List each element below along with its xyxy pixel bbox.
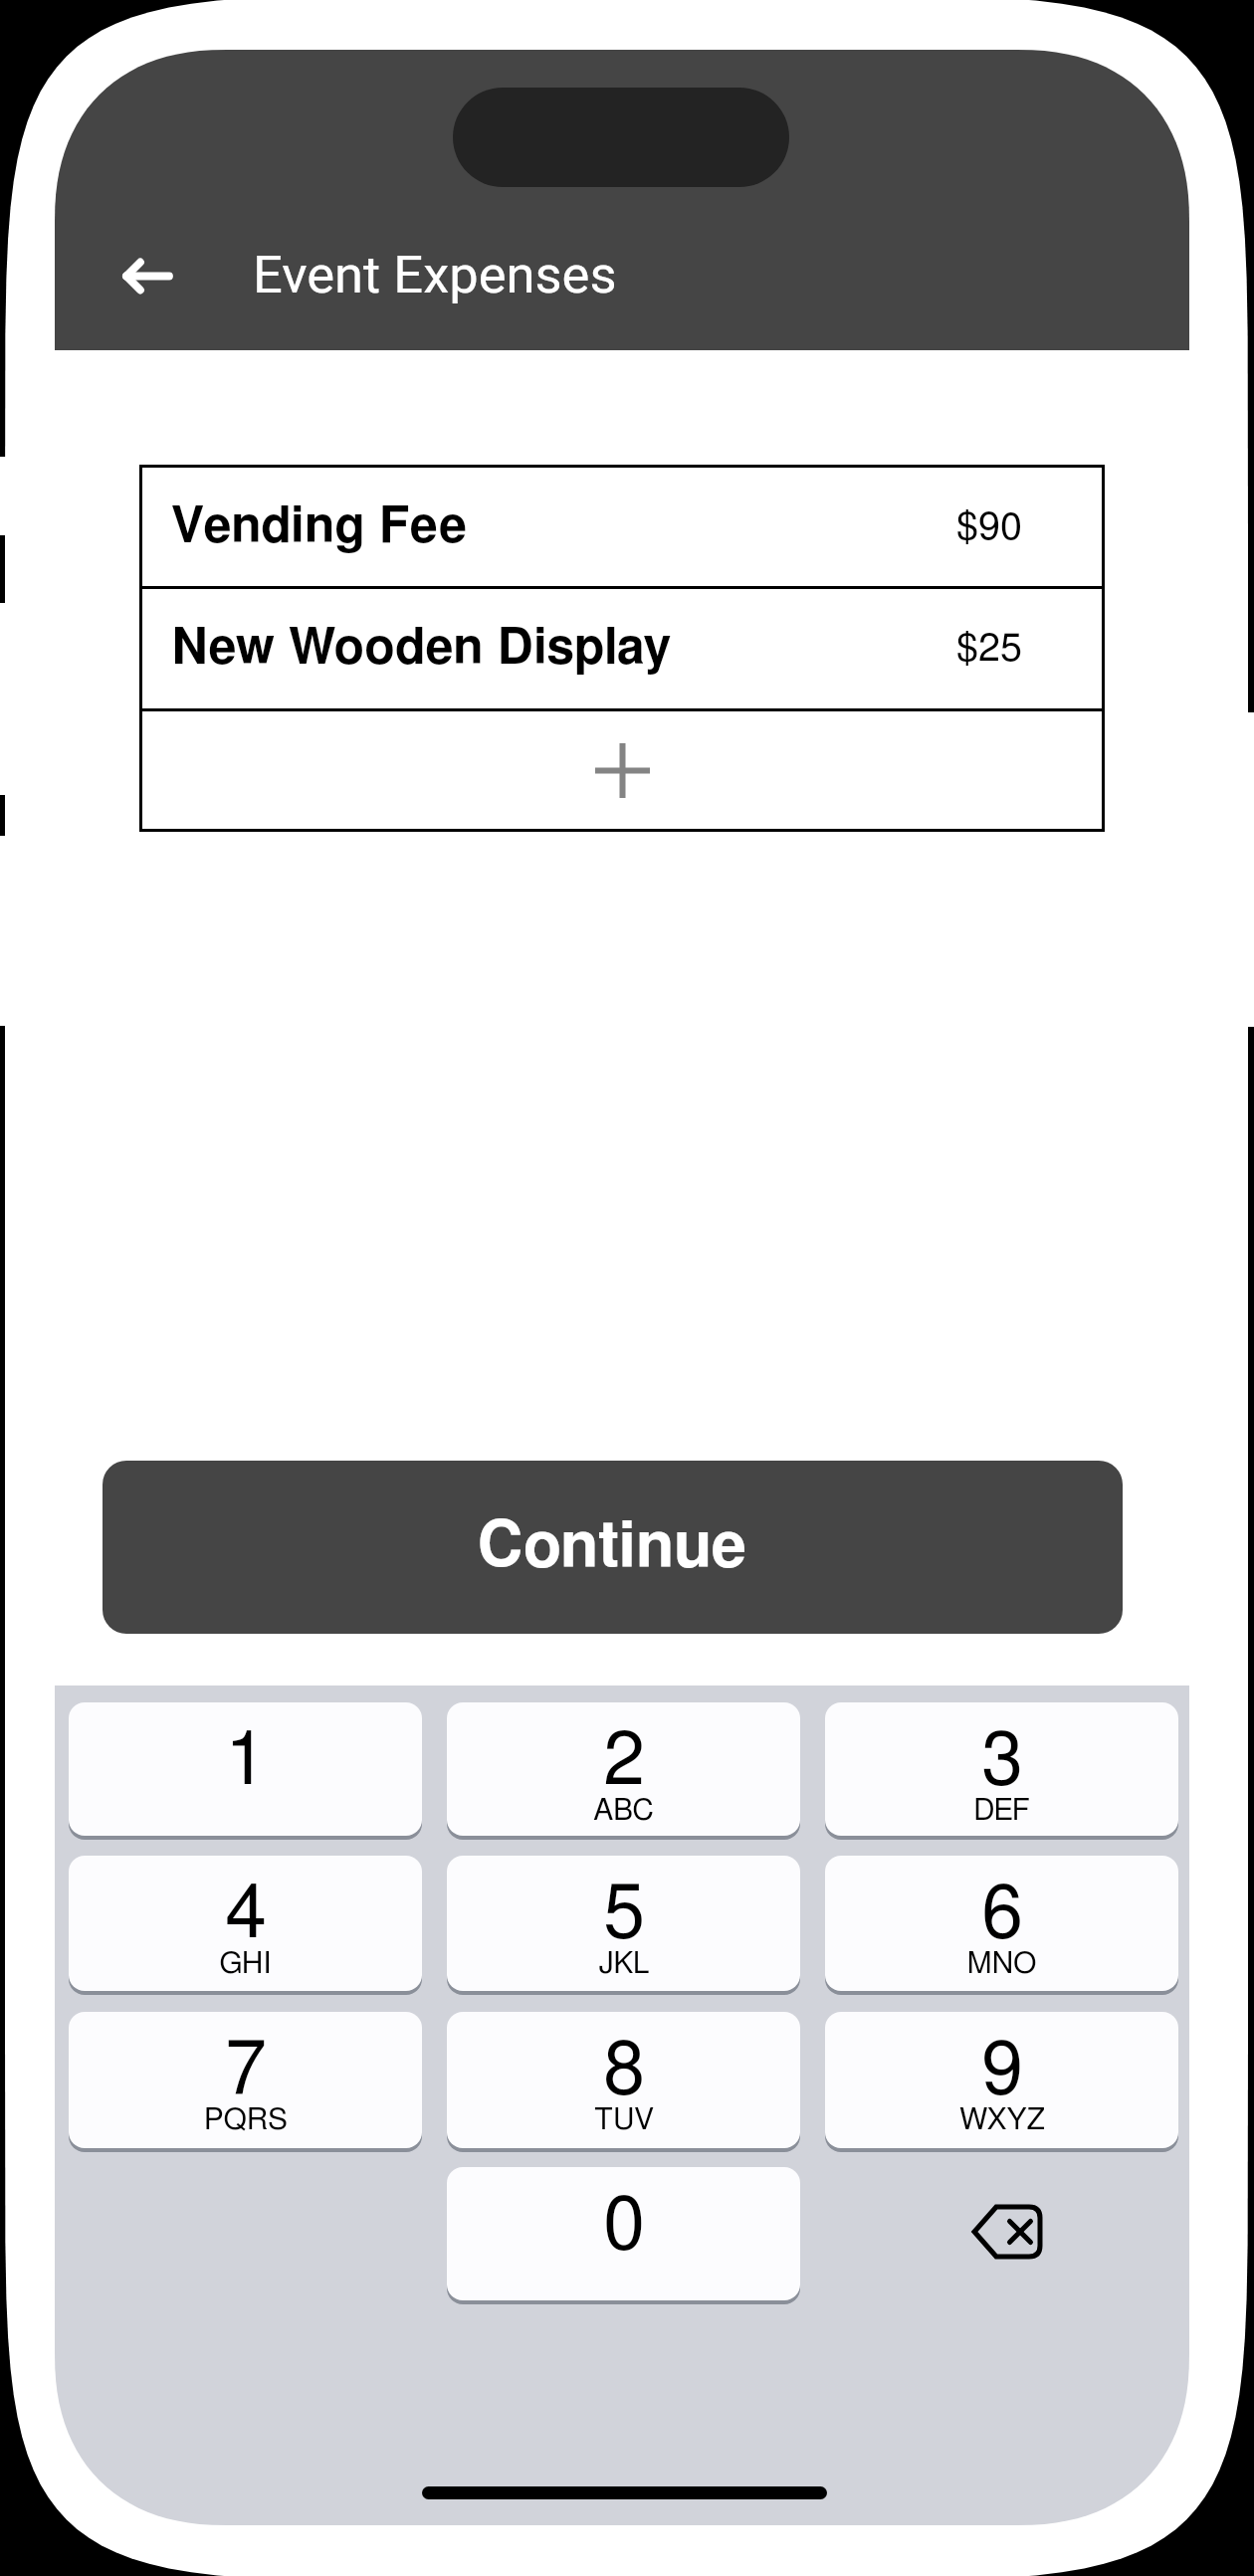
button[interactable]: Add expense bbox=[142, 711, 1102, 829]
button[interactable]: Backspace bbox=[825, 2167, 1178, 2300]
staticText: 8 bbox=[603, 2034, 645, 2108]
button[interactable]: New Wooden Display bbox=[142, 589, 1102, 708]
button[interactable]: 3 bbox=[825, 1702, 1178, 1836]
button[interactable]: Back bbox=[103, 233, 192, 312]
button[interactable]: Vending Fee bbox=[142, 468, 1102, 586]
button[interactable]: 2 bbox=[447, 1702, 800, 1836]
staticText: Event Expenses bbox=[253, 244, 617, 305]
staticText: 9 bbox=[981, 2034, 1023, 2108]
staticText: 5 bbox=[603, 1878, 645, 1952]
staticText: New Wooden Display bbox=[171, 624, 671, 674]
staticText: JKL bbox=[598, 1949, 650, 1979]
staticText: MNO bbox=[966, 1949, 1037, 1979]
staticText: Vending Fee bbox=[171, 502, 468, 552]
staticText: 6 bbox=[981, 1878, 1023, 1952]
button[interactable]: 1 bbox=[69, 1702, 422, 1836]
staticText: WXYZ bbox=[959, 2105, 1045, 2135]
staticText: PQRS bbox=[204, 2105, 288, 2135]
button[interactable]: 6 bbox=[825, 1856, 1178, 1991]
staticText: Continue bbox=[478, 1516, 747, 1579]
staticText: TUV bbox=[594, 2105, 654, 2135]
staticText: 3 bbox=[981, 1724, 1023, 1799]
button[interactable]: 5 bbox=[447, 1856, 800, 1991]
staticText: $25 bbox=[956, 629, 1022, 669]
staticText: 1 bbox=[225, 1724, 267, 1799]
staticText: 7 bbox=[225, 2034, 267, 2108]
button[interactable]: 4 bbox=[69, 1856, 422, 1991]
staticText: 2 bbox=[603, 1724, 645, 1799]
staticText: DEF bbox=[973, 1796, 1030, 1826]
staticText: GHI bbox=[219, 1949, 272, 1979]
staticText: $90 bbox=[956, 507, 1022, 547]
staticText: ABC bbox=[593, 1796, 654, 1826]
button[interactable]: 7 bbox=[69, 2012, 422, 2148]
button[interactable]: 9 bbox=[825, 2012, 1178, 2148]
button[interactable]: 0 bbox=[447, 2167, 800, 2300]
staticText: 4 bbox=[225, 1878, 267, 1952]
button[interactable]: Continue bbox=[103, 1461, 1123, 1634]
staticText: 0 bbox=[603, 2189, 645, 2264]
button[interactable]: 8 bbox=[447, 2012, 800, 2148]
